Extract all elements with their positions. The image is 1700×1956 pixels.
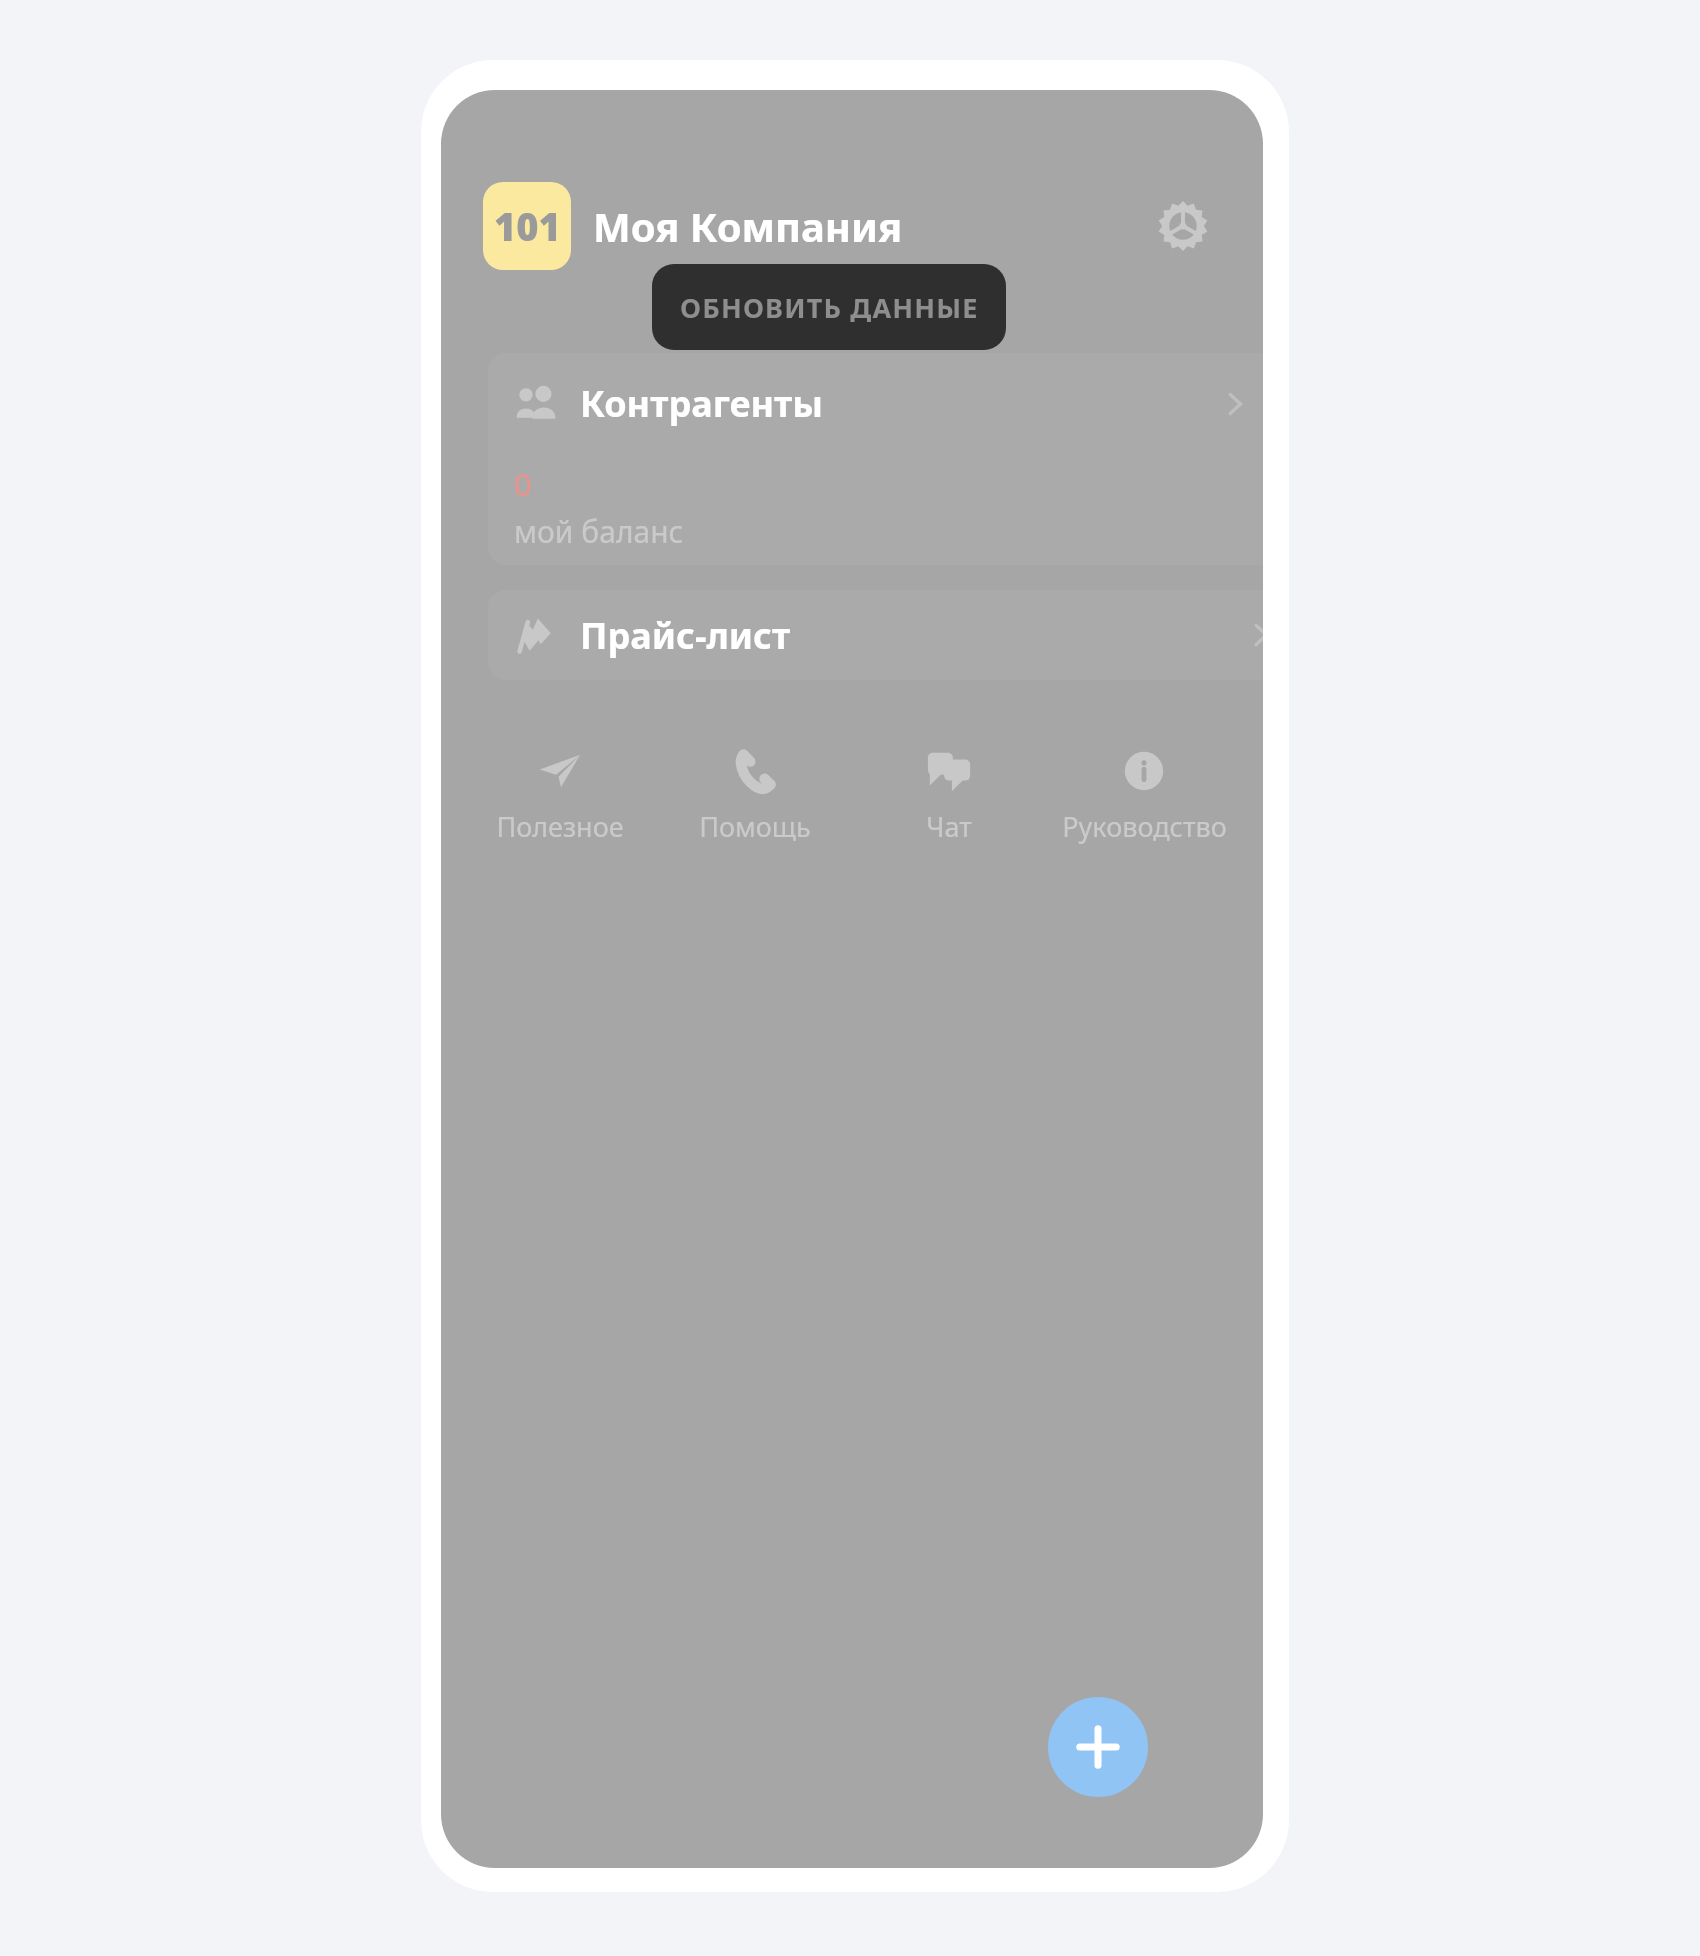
button[interactable]: Прайс-лист [488, 590, 1263, 680]
staticText: Прайс-лист [580, 611, 791, 660]
staticText: ОБНОВИТЬ ДАННЫЕ [680, 289, 979, 326]
staticText: 101 [494, 200, 561, 252]
staticText: Помощь [699, 808, 811, 845]
staticText: 0 [514, 463, 532, 505]
staticText: Руководство [1062, 808, 1227, 845]
button[interactable]: Add [1048, 1697, 1148, 1797]
button[interactable]: Помощь [660, 738, 850, 851]
button[interactable]: Полезное [465, 738, 655, 851]
staticText: Чат [926, 808, 972, 845]
button[interactable]: Settings [1145, 188, 1221, 264]
staticText: Моя Компания [593, 199, 903, 253]
button[interactable]: Руководство [1049, 738, 1239, 851]
button[interactable]: 101 [483, 182, 571, 270]
button[interactable]: Чат [854, 738, 1044, 851]
button[interactable]: Контрагенты [488, 353, 1263, 565]
staticText: Контрагенты [580, 379, 824, 428]
staticText: Полезное [496, 808, 624, 845]
staticText: мой баланс [514, 511, 684, 552]
